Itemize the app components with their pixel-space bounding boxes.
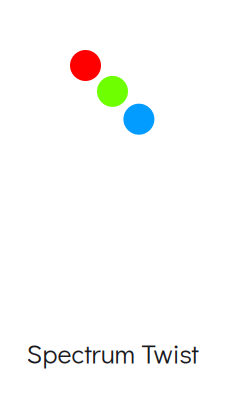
staticText: Spectrum Twist [26,335,198,370]
